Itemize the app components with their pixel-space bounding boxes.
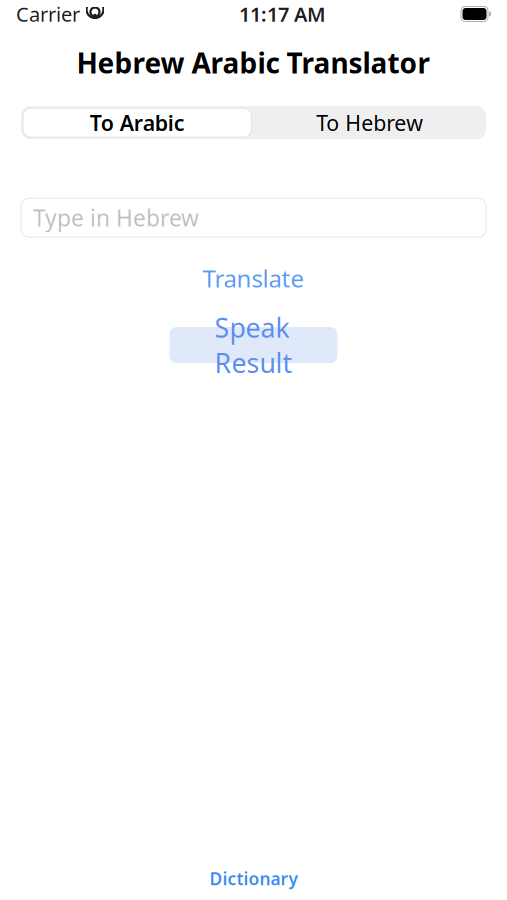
button[interactable]: To Arabic xyxy=(21,106,253,139)
staticText: Translate xyxy=(202,262,304,294)
staticText: Type in Hebrew xyxy=(33,203,199,233)
staticText: Dictionary xyxy=(209,867,297,890)
button[interactable]: Dictionary xyxy=(197,863,309,894)
button[interactable]: Type in Hebrew xyxy=(21,198,486,237)
staticText: 11:17 AM xyxy=(239,1,326,27)
button[interactable]: Translate xyxy=(192,258,314,298)
staticText: Hebrew Arabic Translator xyxy=(76,44,430,81)
staticText: To Arabic xyxy=(90,108,185,137)
button[interactable]: Speak Result xyxy=(169,327,337,363)
staticText: Speak Result xyxy=(214,310,292,380)
staticText: Carrier xyxy=(16,1,80,27)
staticText: To Hebrew xyxy=(316,108,423,137)
button[interactable]: To Hebrew xyxy=(253,106,486,139)
